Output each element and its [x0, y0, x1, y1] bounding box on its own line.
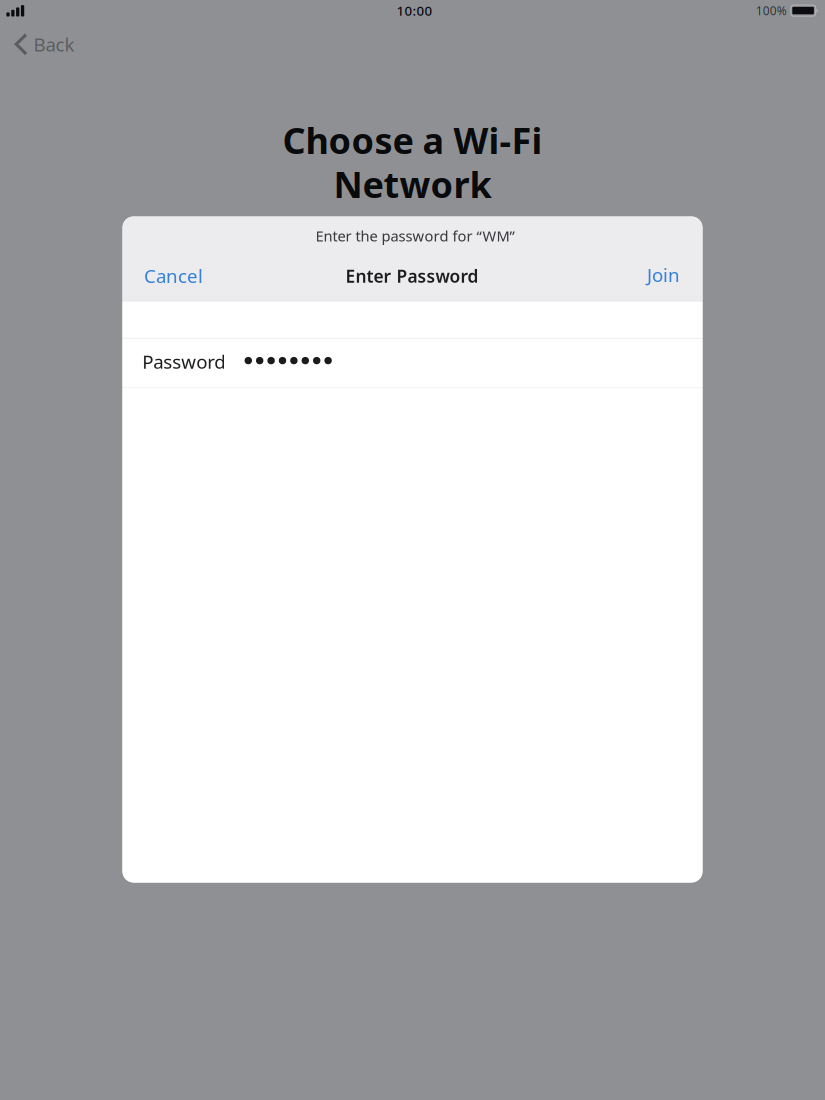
staticText: Enter Password: [345, 265, 478, 288]
staticText: 100%: [756, 3, 787, 19]
staticText: Back: [33, 32, 74, 57]
staticText: 10:00: [397, 2, 433, 19]
staticText: Join: [647, 262, 680, 287]
staticText: Network: [334, 160, 492, 208]
button[interactable]: Cancel: [130, 252, 217, 299]
staticText: Enter the password for “WM”: [315, 226, 514, 245]
button[interactable]: Back: [0, 22, 84, 66]
staticText: Cancel: [144, 263, 203, 288]
staticText: Choose a Wi-Fi: [283, 116, 543, 164]
button[interactable]: Join: [633, 251, 694, 298]
staticText: Password: [142, 349, 225, 374]
